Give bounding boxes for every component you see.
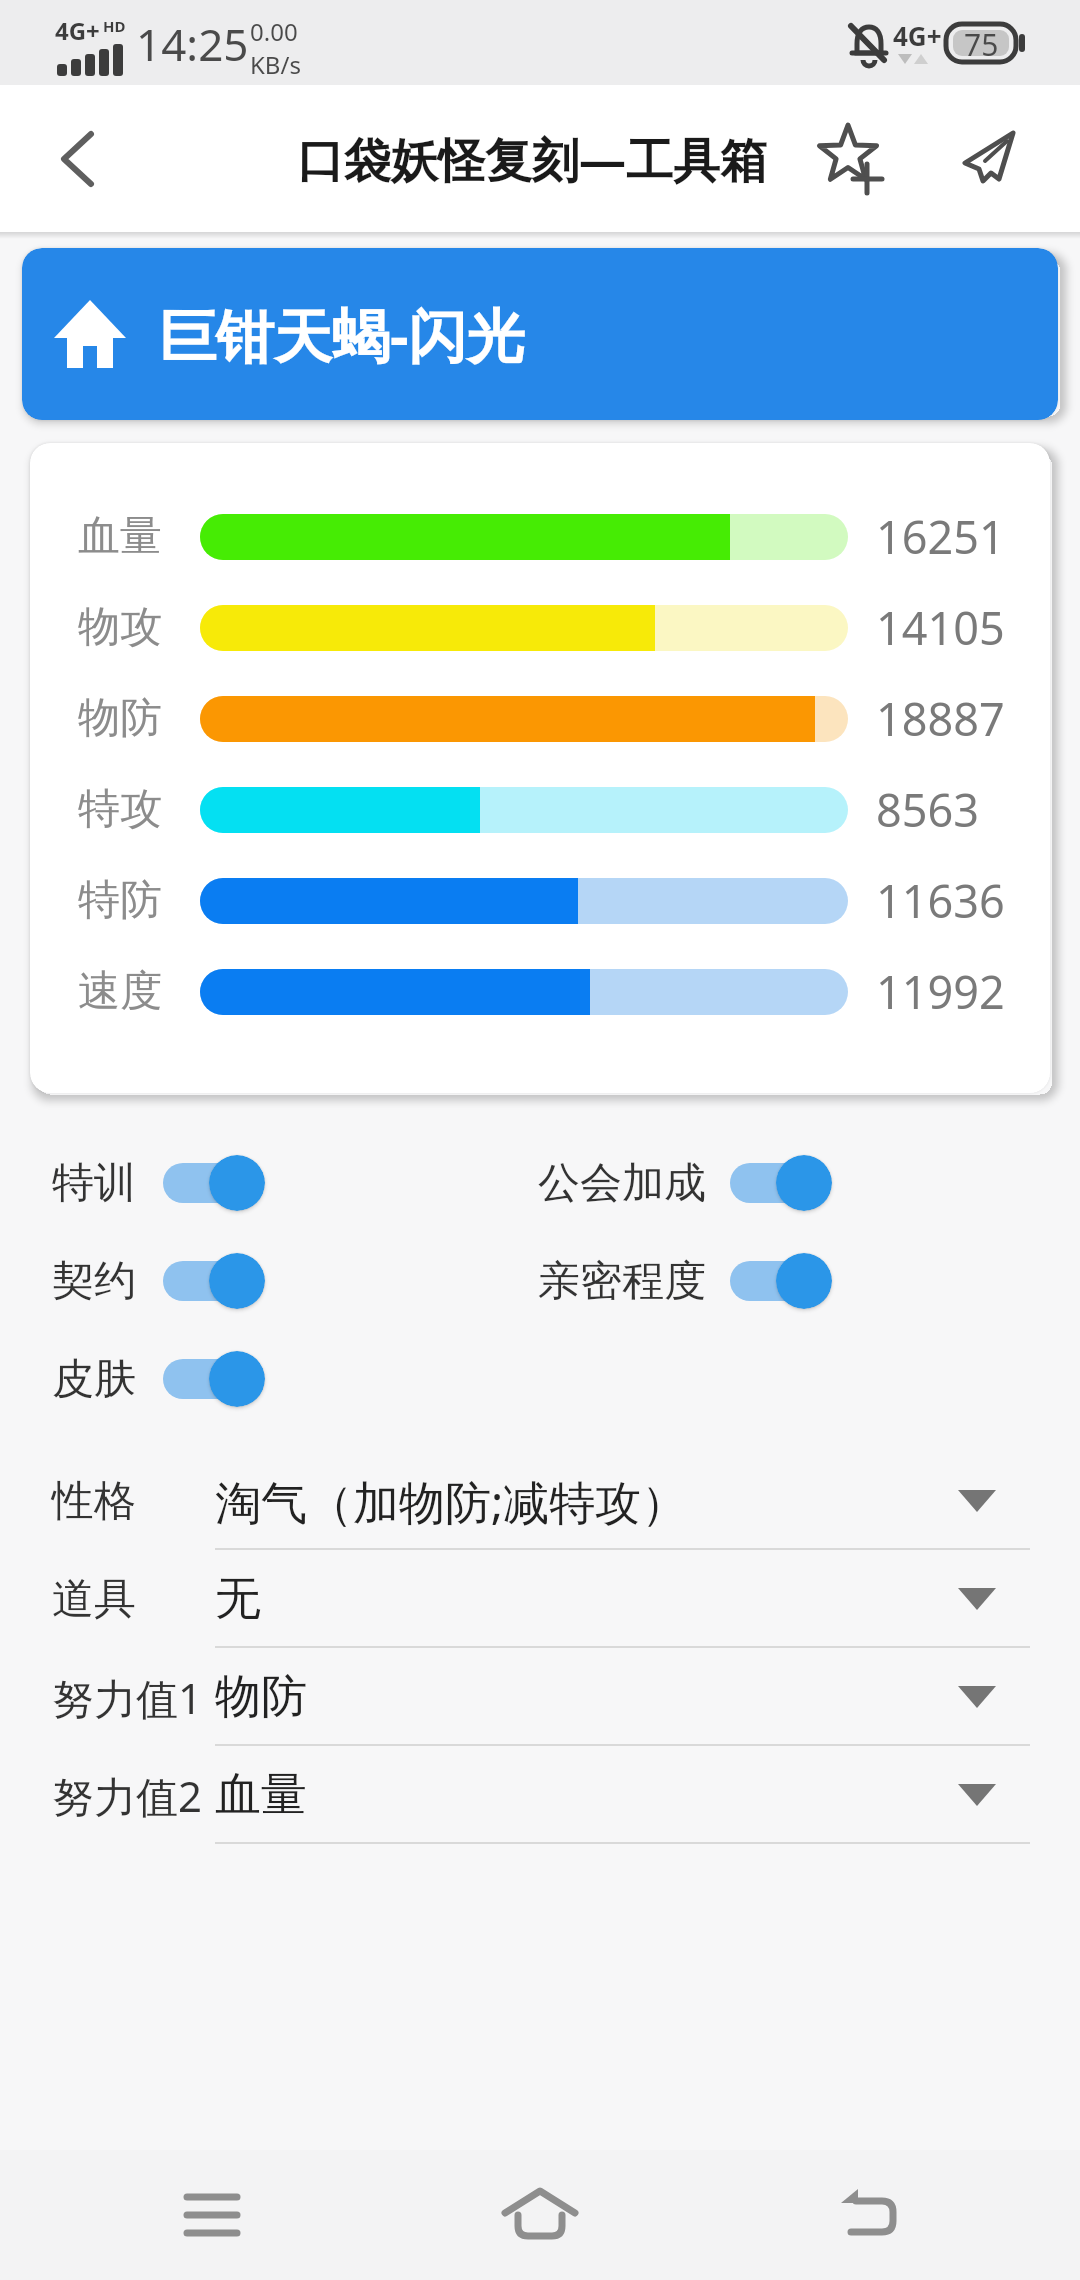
staticText: 性格 xyxy=(52,1475,136,1528)
staticText: 皮肤 xyxy=(52,1353,136,1406)
staticText: 无 xyxy=(215,1570,261,1628)
staticText: 物防 xyxy=(78,692,162,745)
button[interactable] xyxy=(163,1251,265,1311)
staticText: 16251 xyxy=(876,506,1005,567)
staticText: 道具 xyxy=(52,1573,136,1626)
button[interactable] xyxy=(730,1251,832,1311)
staticText: 淘气（加物防;减特攻） xyxy=(215,1470,688,1533)
staticText: 11636 xyxy=(876,870,1005,931)
staticText: 14:25 xyxy=(136,14,249,74)
staticText: 速度 xyxy=(78,965,162,1018)
staticText: 4G+ xyxy=(55,14,100,47)
button[interactable] xyxy=(163,1153,265,1213)
staticText: 巨钳天蝎-闪光 xyxy=(158,295,525,374)
button[interactable] xyxy=(830,2177,906,2253)
staticText: 血量 xyxy=(215,1766,307,1824)
staticText: 特防 xyxy=(78,874,162,927)
staticText: 口袋妖怪复刻—工具箱 xyxy=(297,127,767,191)
staticText: KB/s xyxy=(250,48,301,81)
button[interactable]: 道具 xyxy=(0,1550,1080,1648)
staticText: 18887 xyxy=(876,688,1005,749)
button[interactable] xyxy=(178,2181,246,2249)
button[interactable] xyxy=(500,2175,580,2255)
staticText: 特攻 xyxy=(78,783,162,836)
staticText: 75 xyxy=(964,24,999,65)
staticText: 努力值1 xyxy=(52,1669,203,1726)
staticText: 物攻 xyxy=(78,601,162,654)
button[interactable] xyxy=(44,124,114,194)
button[interactable] xyxy=(812,121,888,197)
button[interactable] xyxy=(730,1153,832,1213)
staticText: 14105 xyxy=(876,597,1005,658)
staticText: 物防 xyxy=(215,1668,307,1726)
button[interactable] xyxy=(955,121,1031,197)
button[interactable] xyxy=(163,1349,265,1409)
button[interactable]: 努力值2 xyxy=(0,1746,1080,1844)
button[interactable]: 巨钳天蝎-闪光 xyxy=(22,248,1058,420)
staticText: 特训 xyxy=(52,1157,136,1210)
button[interactable]: 努力值1 xyxy=(0,1648,1080,1746)
staticText: 血量 xyxy=(78,510,162,563)
staticText: 亲密程度 xyxy=(538,1255,706,1308)
staticText: 0.00 xyxy=(250,15,298,48)
staticText: HD xyxy=(103,16,126,36)
staticText: 努力值2 xyxy=(52,1767,203,1824)
button[interactable]: 性格 xyxy=(0,1452,1080,1550)
staticText: 4G+ xyxy=(893,18,942,53)
staticText: 11992 xyxy=(876,961,1005,1022)
staticText: 8563 xyxy=(876,779,979,840)
staticText: 契约 xyxy=(52,1255,136,1308)
staticText: 公会加成 xyxy=(538,1157,706,1210)
